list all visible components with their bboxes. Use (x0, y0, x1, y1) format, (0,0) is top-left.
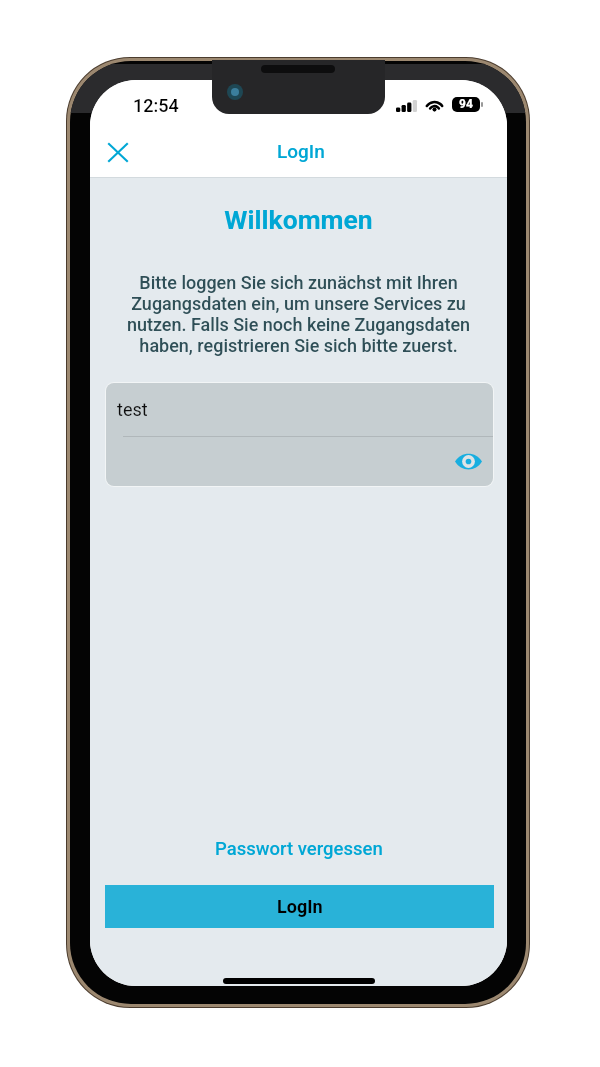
button[interactable]: Close (99, 133, 137, 171)
staticText: LogIn (277, 896, 323, 917)
button[interactable]: Show password (451, 444, 485, 478)
staticText: Passwort vergessen (215, 838, 383, 860)
button[interactable]: Passwort vergessen (90, 829, 507, 869)
staticText: Willkommen (90, 204, 507, 235)
button[interactable]: test (106, 383, 493, 486)
staticText: Bitte loggen Sie sich zunächst mit Ihren… (120, 272, 477, 356)
staticText: 94 (459, 97, 473, 111)
staticText: 12:54 (133, 95, 179, 116)
staticText: test (117, 399, 148, 420)
staticText: LogIn (277, 140, 325, 162)
button[interactable]: LogIn (105, 885, 494, 928)
